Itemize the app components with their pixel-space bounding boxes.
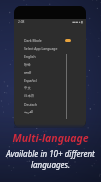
button[interactable]: Select App Language xyxy=(14,44,86,52)
staticText: हिन्दी xyxy=(24,62,31,67)
staticText: 2:08 xyxy=(18,20,25,24)
staticText: 中文 xyxy=(24,86,31,90)
button[interactable]: العربية xyxy=(14,108,86,116)
staticText: Deutsch xyxy=(24,102,38,107)
staticText: Español xyxy=(24,78,37,83)
staticText: Available in 10+ different languages. xyxy=(3,148,98,170)
staticText: Dark Mode xyxy=(24,38,42,43)
staticText: Select App Language xyxy=(24,46,58,51)
staticText: ▬▬ ▴ ▮ xyxy=(72,20,84,24)
staticText: English xyxy=(24,54,36,59)
button[interactable]: मराठी xyxy=(14,68,86,76)
staticText: 日本語 xyxy=(24,94,35,98)
button[interactable]: Dark Mode xyxy=(14,36,86,44)
button[interactable]: हिन्दी xyxy=(14,60,86,68)
staticText: العربية xyxy=(24,110,34,114)
button[interactable]: Español xyxy=(14,76,86,84)
button[interactable]: 中文 xyxy=(14,84,86,92)
staticText: मराठी xyxy=(24,70,32,75)
button[interactable]: English xyxy=(14,52,86,60)
button[interactable]: 日本語 xyxy=(14,92,86,100)
button[interactable]: Deutsch xyxy=(14,100,86,108)
staticText: Multi-language xyxy=(12,131,89,145)
